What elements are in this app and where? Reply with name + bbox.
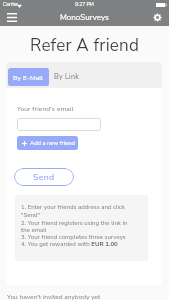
staticText: By Link [54, 72, 80, 82]
staticText: the email 3. Your friend completes three… [21, 226, 126, 247]
staticText: Add a new friend [30, 139, 75, 147]
staticText: 9:27 PM [75, 1, 94, 8]
staticText: MonoSurveys [60, 12, 109, 23]
button[interactable]: Send [14, 168, 74, 186]
staticText: Refer A friend [30, 34, 140, 57]
staticText: By E-Mail [13, 73, 44, 82]
button[interactable]: By Link [52, 68, 82, 86]
staticText: Carrier [3, 1, 19, 8]
staticText: 1. Enter your friends address and click … [21, 203, 128, 227]
staticText: Your friend's email [17, 104, 74, 113]
staticText: Send [33, 171, 55, 183]
button[interactable]: Settings [145, 9, 169, 26]
staticText: You haven't invited anybody yet [7, 292, 101, 300]
button[interactable]: Add a new friend [17, 136, 78, 150]
button[interactable]: Open navigation menu [0, 9, 24, 26]
button[interactable]: By E-Mail [8, 68, 49, 86]
button[interactable] [17, 118, 101, 131]
